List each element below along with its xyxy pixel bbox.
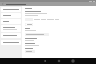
button[interactable] [1,34,21,37]
button[interactable] [1,20,21,23]
button[interactable]: Back [42,58,48,64]
button[interactable] [25,50,35,53]
button[interactable] [1,26,21,31]
button[interactable] [25,33,49,36]
button[interactable]: Recent apps [70,58,76,64]
button[interactable] [1,8,21,11]
button[interactable]: Home [56,58,62,64]
button[interactable] [1,41,21,44]
button[interactable] [1,14,21,17]
button[interactable]: Navigate up [1,2,5,6]
button[interactable] [25,23,33,26]
